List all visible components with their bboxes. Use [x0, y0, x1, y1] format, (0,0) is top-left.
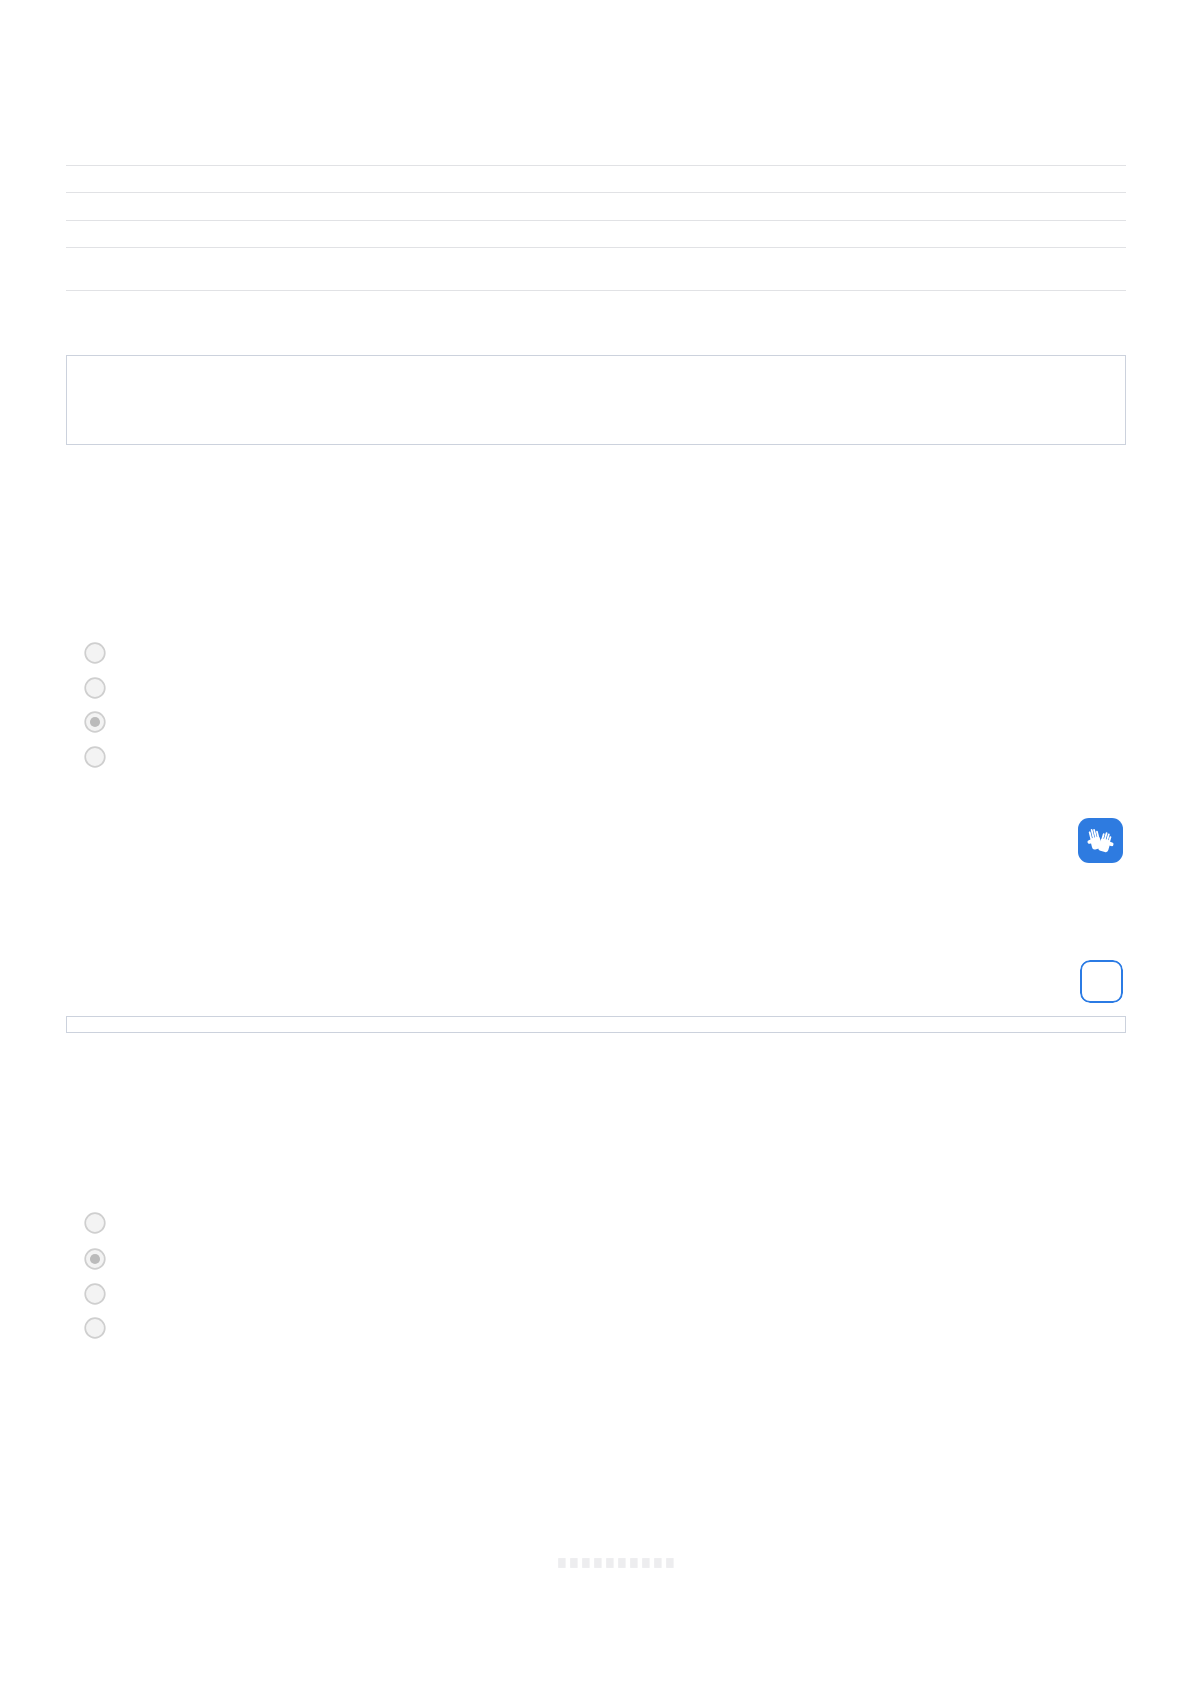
- button[interactable]: Option: [76, 1275, 114, 1313]
- button[interactable]: Sign language interpreter: [1078, 818, 1123, 863]
- button[interactable]: Option: [76, 738, 114, 776]
- button[interactable]: Option: [76, 1309, 114, 1347]
- button[interactable]: [66, 355, 1126, 445]
- button[interactable]: Option: [76, 634, 114, 672]
- button[interactable]: Selected option: [76, 703, 114, 741]
- button[interactable]: Selected option: [76, 1240, 114, 1278]
- button[interactable]: Action: [1080, 960, 1123, 1003]
- button[interactable]: [66, 1016, 1126, 1033]
- button[interactable]: Option: [76, 1204, 114, 1242]
- button[interactable]: Option: [76, 669, 114, 707]
